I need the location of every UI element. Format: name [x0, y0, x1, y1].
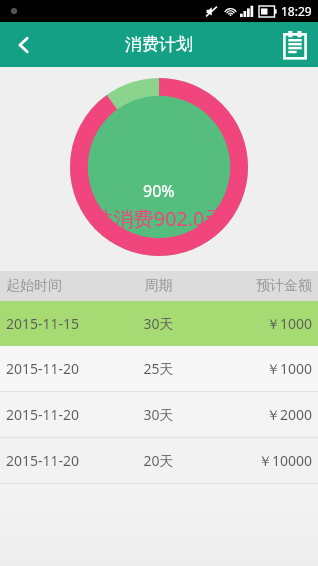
staticText: 预计金额	[206, 277, 312, 295]
button[interactable]: 2015-11-15	[0, 301, 318, 346]
staticText: 18:29	[281, 3, 312, 19]
staticText: 2015-11-15	[6, 314, 111, 333]
button[interactable]: 2015-11-20	[0, 438, 318, 483]
staticText: ￥1000	[206, 314, 312, 333]
button[interactable]: Plan list	[272, 22, 318, 67]
staticText: 周期	[111, 277, 206, 295]
staticText: 90%	[143, 180, 175, 202]
button[interactable]: 2015-11-20	[0, 392, 318, 437]
staticText: 消费计划	[125, 34, 193, 55]
button[interactable]: Back	[0, 22, 48, 67]
staticText: 25天	[111, 359, 206, 378]
staticText: 起始时间	[6, 277, 111, 295]
staticText: 2015-11-20	[6, 405, 111, 424]
staticText: 30天	[111, 314, 206, 333]
staticText: 2015-11-20	[6, 451, 111, 470]
staticText: 20天	[111, 451, 206, 470]
staticText: 共消费902.0元	[93, 205, 225, 232]
staticText: ￥10000	[206, 451, 312, 470]
staticText: ￥1000	[206, 359, 312, 378]
staticText: 30天	[111, 405, 206, 424]
button[interactable]: 2015-11-20	[0, 346, 318, 391]
staticText: ￥2000	[206, 405, 312, 424]
staticText: 2015-11-20	[6, 359, 111, 378]
